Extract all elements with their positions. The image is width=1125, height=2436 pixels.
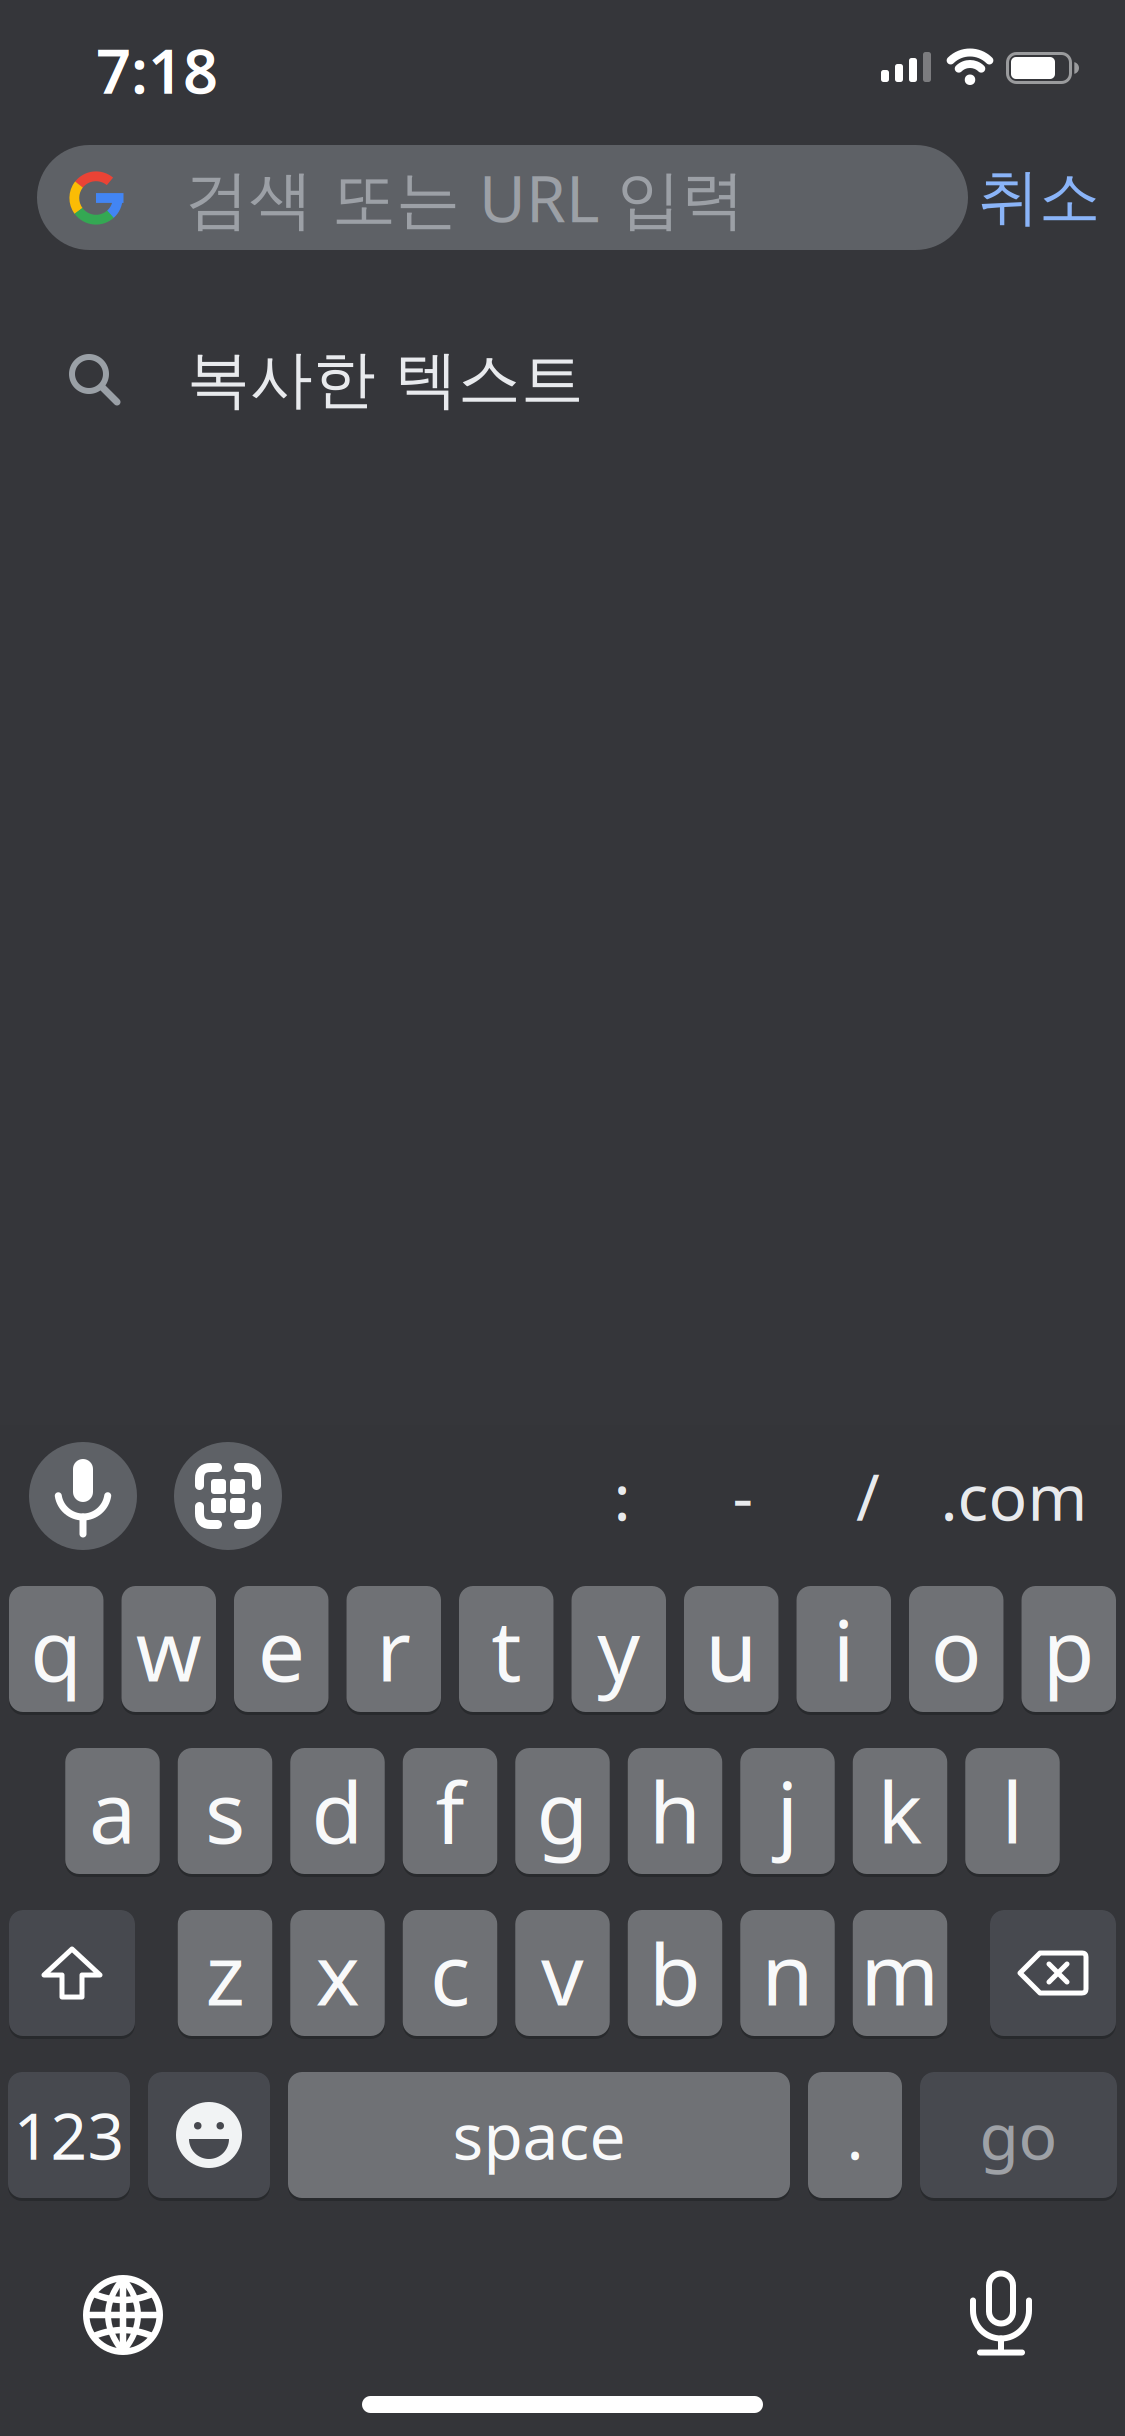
button[interactable]: b — [628, 1910, 722, 2039]
staticText: : — [613, 1453, 630, 1538]
staticText: t — [491, 1593, 521, 1705]
staticText: x — [315, 1917, 359, 2029]
button[interactable]: s — [178, 1748, 272, 1877]
button[interactable]: l — [965, 1748, 1060, 1877]
staticText: 7:18 — [96, 29, 218, 111]
button[interactable]: go — [920, 2072, 1117, 2201]
staticText: 취소 — [978, 160, 1100, 235]
button[interactable]: t — [459, 1586, 553, 1715]
staticText: z — [205, 1917, 244, 2029]
staticText: j — [776, 1755, 798, 1867]
button[interactable]: 복사한 텍스트 — [0, 325, 1125, 435]
button[interactable]: shift — [9, 1910, 135, 2039]
staticText: h — [649, 1755, 701, 1867]
button[interactable]: : — [572, 1442, 672, 1550]
button[interactable]: a — [65, 1748, 160, 1877]
button[interactable]: c — [403, 1910, 497, 2039]
staticText: space — [452, 2092, 625, 2177]
button[interactable]: i — [796, 1586, 891, 1715]
staticText: p — [1043, 1593, 1095, 1705]
button[interactable]: delete — [990, 1910, 1116, 2039]
staticText: r — [376, 1593, 411, 1705]
staticText: b — [649, 1917, 701, 2029]
button[interactable]: 취소 — [929, 145, 1125, 250]
staticText: u — [705, 1593, 757, 1705]
staticText: f — [435, 1755, 464, 1867]
button[interactable]: - — [693, 1442, 793, 1550]
button[interactable]: .com — [904, 1442, 1124, 1550]
staticText: go — [979, 2092, 1057, 2177]
staticText: w — [136, 1593, 202, 1705]
staticText: c — [430, 1917, 470, 2029]
button[interactable]: emoji — [148, 2072, 270, 2201]
staticText: m — [860, 1917, 939, 2029]
staticText: 검색 또는 URL 입력 — [185, 155, 745, 240]
button[interactable]: k — [853, 1748, 947, 1877]
staticText: q — [30, 1593, 82, 1705]
staticText: 123 — [13, 2092, 124, 2177]
staticText: o — [931, 1593, 982, 1705]
button[interactable]: f — [403, 1748, 497, 1877]
staticText: .com — [940, 1453, 1087, 1538]
button[interactable]: w — [121, 1586, 216, 1715]
button[interactable]: h — [628, 1748, 722, 1877]
button[interactable]: space — [288, 2072, 790, 2201]
button[interactable]: 받아쓰기 — [946, 2258, 1056, 2368]
button[interactable]: 검색 또는 URL 입력 — [37, 145, 968, 250]
staticText: y — [597, 1593, 640, 1705]
staticText: a — [89, 1755, 136, 1867]
staticText: / — [856, 1453, 880, 1538]
staticText: . — [846, 2092, 863, 2177]
button[interactable]: v — [515, 1910, 610, 2039]
button[interactable]: r — [346, 1586, 441, 1715]
staticText: l — [1001, 1755, 1023, 1867]
staticText: e — [258, 1593, 305, 1705]
button[interactable]: d — [290, 1748, 385, 1877]
button[interactable]: p — [1021, 1586, 1116, 1715]
staticText: d — [311, 1755, 363, 1867]
button[interactable]: x — [290, 1910, 385, 2039]
staticText: v — [541, 1917, 584, 2029]
button[interactable]: / — [818, 1442, 918, 1550]
button[interactable]: 다음 키보드 — [68, 2260, 178, 2370]
button[interactable]: u — [684, 1586, 778, 1715]
staticText: 복사한 텍스트 — [187, 341, 584, 418]
button[interactable]: m — [853, 1910, 947, 2039]
button[interactable]: e — [234, 1586, 328, 1715]
button[interactable]: z — [178, 1910, 272, 2039]
button[interactable]: QR 코드 스캔 — [174, 1442, 282, 1550]
button[interactable]: j — [740, 1748, 835, 1877]
button[interactable]: o — [909, 1586, 1003, 1715]
staticText: - — [732, 1453, 753, 1538]
staticText: g — [536, 1755, 588, 1867]
staticText: s — [205, 1755, 245, 1867]
button[interactable]: 음성 검색 — [29, 1442, 137, 1550]
staticText: i — [833, 1593, 855, 1705]
button[interactable]: numbers — [8, 2072, 130, 2201]
button[interactable]: . — [808, 2072, 902, 2201]
button[interactable]: q — [9, 1586, 103, 1715]
staticText: n — [761, 1917, 813, 2029]
button[interactable]: n — [740, 1910, 835, 2039]
staticText: k — [877, 1755, 922, 1867]
button[interactable]: y — [571, 1586, 666, 1715]
button[interactable]: g — [515, 1748, 610, 1877]
